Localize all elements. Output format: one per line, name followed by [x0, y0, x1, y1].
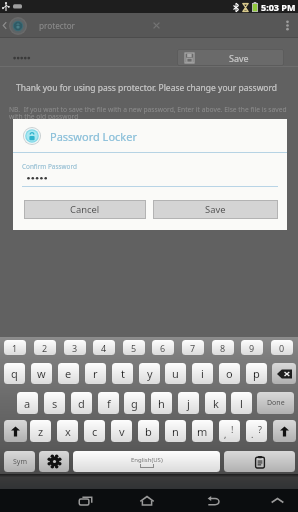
staticText: u	[172, 366, 179, 381]
staticText: h	[158, 396, 165, 411]
button[interactable]: a	[17, 392, 38, 414]
button[interactable]: r	[85, 363, 106, 384]
button[interactable]: Shift	[273, 420, 296, 442]
staticText: r	[93, 366, 98, 381]
button[interactable]: s	[44, 392, 65, 414]
staticText: 8	[220, 342, 226, 354]
staticText: t	[121, 366, 125, 381]
button[interactable]: j	[178, 392, 199, 414]
button[interactable]: l	[231, 392, 252, 414]
staticText: l	[240, 396, 243, 411]
staticText: 6	[160, 342, 166, 354]
button[interactable]: h	[151, 392, 172, 414]
staticText: 3	[72, 342, 78, 354]
button[interactable]: t	[112, 363, 133, 384]
button[interactable]: f	[98, 392, 119, 414]
staticText: 5:03 PM	[261, 1, 296, 13]
button[interactable]: c	[84, 420, 105, 442]
button[interactable]: Clear text	[141, 13, 171, 38]
staticText: s	[52, 396, 58, 411]
staticText: w	[37, 366, 46, 381]
staticText: o	[226, 366, 233, 381]
button[interactable]: Keyboard settings	[39, 451, 69, 472]
button[interactable]: More options	[276, 13, 298, 38]
button[interactable]: o	[219, 363, 240, 384]
button[interactable]: n	[165, 420, 186, 442]
staticText: b	[145, 424, 152, 439]
staticText: p	[253, 366, 260, 381]
button[interactable]: Save	[153, 200, 278, 219]
button[interactable]: z	[30, 420, 51, 442]
button[interactable]: Space	[73, 451, 220, 472]
button[interactable]: 2	[34, 340, 56, 355]
staticText: a	[24, 396, 31, 411]
button[interactable]: Home	[128, 489, 166, 512]
button[interactable]: Clipboard	[224, 451, 295, 472]
button[interactable]: b	[138, 420, 159, 442]
button[interactable]: 6	[152, 340, 174, 355]
button[interactable]: 9	[241, 340, 263, 355]
button[interactable]: x	[57, 420, 78, 442]
button[interactable]: Done	[257, 392, 294, 414]
staticText: v	[119, 424, 125, 439]
staticText: 4	[101, 342, 107, 354]
staticText: Sym	[13, 457, 27, 467]
staticText: m	[197, 424, 208, 439]
button[interactable]: p	[246, 363, 267, 384]
button[interactable]: 7	[182, 340, 204, 355]
staticText: Confirm Password	[22, 162, 77, 171]
staticText: Save	[229, 52, 249, 64]
button[interactable]: y	[139, 363, 160, 384]
staticText: x	[65, 424, 71, 439]
staticText: 5	[131, 342, 137, 354]
button[interactable]: Cancel	[24, 200, 146, 219]
button[interactable]: Symbols	[4, 451, 35, 472]
button[interactable]: d	[71, 392, 92, 414]
staticText: Thank you for using pass protector. Plea…	[16, 82, 278, 94]
staticText: i	[201, 366, 204, 381]
button[interactable]: w	[31, 363, 52, 384]
button[interactable]: k	[205, 392, 226, 414]
button[interactable]: Hide keyboard	[258, 489, 296, 512]
button[interactable]: m	[192, 420, 213, 442]
staticText: ,	[224, 428, 227, 440]
button[interactable]: Backspace	[272, 363, 296, 384]
button[interactable]: 4	[93, 340, 115, 355]
staticText: z	[38, 424, 44, 439]
staticText: 7	[190, 342, 196, 354]
staticText: 9	[249, 342, 255, 354]
button[interactable]: u	[165, 363, 186, 384]
staticText: d	[78, 396, 85, 411]
button[interactable]: Back	[194, 489, 232, 512]
button[interactable]: e	[58, 363, 79, 384]
button[interactable]: Navigate up	[0, 13, 30, 38]
button[interactable]: g	[124, 392, 145, 414]
button[interactable]: Shift	[4, 420, 27, 442]
staticText: Done	[267, 398, 285, 408]
button[interactable]: q	[4, 363, 25, 384]
staticText: Password Locker	[50, 129, 137, 144]
staticText: 1	[12, 342, 18, 354]
staticText: j	[187, 396, 190, 411]
button[interactable]: Save	[177, 49, 284, 66]
button[interactable]: i	[192, 363, 213, 384]
staticText: !	[231, 423, 234, 435]
staticText: ?	[258, 423, 262, 435]
staticText: .	[251, 428, 254, 440]
staticText: q	[11, 366, 18, 381]
staticText: c	[92, 424, 98, 439]
button[interactable]: !	[219, 420, 240, 442]
staticText: NB. If you want to save the file with a …	[9, 105, 287, 121]
button[interactable]: Recent apps	[66, 489, 104, 512]
staticText: protector	[39, 20, 76, 31]
button[interactable]: 8	[212, 340, 234, 355]
staticText: 0	[279, 342, 285, 354]
button[interactable]: ?	[246, 420, 267, 442]
button[interactable]: 5	[123, 340, 145, 355]
staticText: f	[107, 396, 111, 411]
button[interactable]: 1	[4, 340, 26, 355]
button[interactable]: 3	[64, 340, 86, 355]
staticText: y	[147, 366, 153, 381]
button[interactable]: v	[111, 420, 132, 442]
button[interactable]: 0	[271, 340, 293, 355]
